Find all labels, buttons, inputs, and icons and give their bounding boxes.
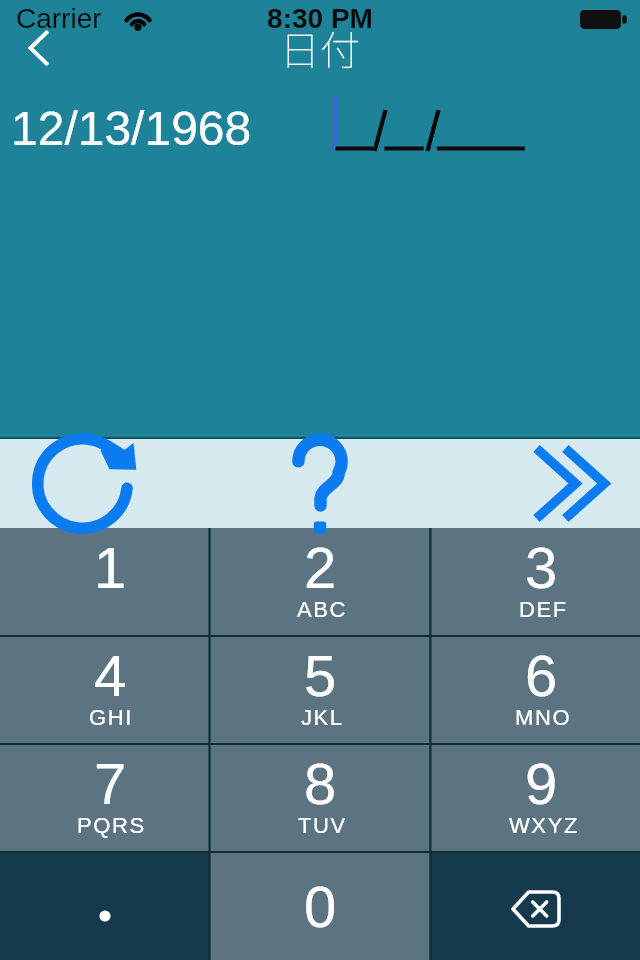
staticText: Carrier bbox=[16, 3, 102, 34]
staticText: 日付 bbox=[0, 19, 640, 77]
staticText: 0 bbox=[304, 874, 337, 939]
staticText: 8:30 PM bbox=[0, 3, 640, 34]
button[interactable]: 4 bbox=[0, 636, 210, 744]
staticText: MNO bbox=[515, 705, 572, 730]
staticText: WXYZ bbox=[509, 813, 579, 838]
button[interactable]: 2 bbox=[210, 528, 431, 636]
staticText: 2 bbox=[304, 535, 337, 600]
staticText: PQRS bbox=[77, 813, 146, 838]
button[interactable]: Decimal point bbox=[0, 852, 210, 960]
staticText: 8 bbox=[304, 751, 337, 816]
staticText: 3 bbox=[525, 535, 558, 600]
button[interactable]: 9 bbox=[431, 744, 640, 852]
staticText: GHI bbox=[89, 705, 133, 730]
staticText: ABC bbox=[297, 597, 348, 622]
staticText: 4 bbox=[94, 643, 127, 708]
button[interactable]: Next bbox=[528, 440, 616, 528]
staticText: 7 bbox=[94, 751, 127, 816]
button[interactable]: Backspace bbox=[431, 852, 640, 960]
staticText: TUV bbox=[298, 813, 347, 838]
button[interactable]: 0 bbox=[210, 852, 431, 960]
button[interactable]: Reset bbox=[24, 426, 148, 528]
button[interactable]: 1 bbox=[0, 528, 210, 636]
staticText: JKL bbox=[301, 705, 344, 730]
staticText: 1 bbox=[94, 535, 127, 600]
button[interactable]: 7 bbox=[0, 744, 210, 852]
staticText: 9 bbox=[525, 751, 558, 816]
button[interactable]: 3 bbox=[431, 528, 640, 636]
button[interactable]: Back bbox=[10, 20, 66, 76]
staticText: 12/13/1968 bbox=[11, 102, 252, 156]
staticText: DEF bbox=[519, 597, 568, 622]
button[interactable]: 8 bbox=[210, 744, 431, 852]
button[interactable]: Help bbox=[285, 428, 355, 532]
staticText: 5 bbox=[304, 643, 337, 708]
button[interactable]: 5 bbox=[210, 636, 431, 744]
button[interactable]: 6 bbox=[431, 636, 640, 744]
staticText: 6 bbox=[525, 643, 558, 708]
